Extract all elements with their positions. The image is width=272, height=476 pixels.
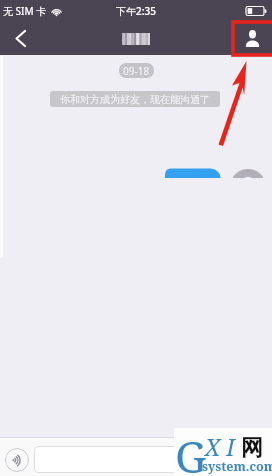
staticText: G	[175, 426, 207, 474]
button[interactable]	[34, 446, 266, 473]
button[interactable]: Contact profile	[232, 22, 272, 55]
staticText: 网	[241, 434, 263, 462]
button[interactable]: Voice message	[5, 448, 29, 472]
staticText: 无 SIM 卡	[3, 4, 47, 18]
button[interactable]	[157, 167, 224, 178]
staticText: X I	[205, 431, 235, 462]
staticText: 你和对方成为好友，现在能沟通了	[60, 93, 210, 106]
staticText: 下午2:35	[116, 4, 156, 18]
button[interactable]: Back	[0, 22, 40, 55]
staticText: system.com	[202, 458, 272, 475]
staticText: 09-18	[123, 64, 150, 78]
button[interactable]: Contact avatar	[233, 167, 263, 178]
